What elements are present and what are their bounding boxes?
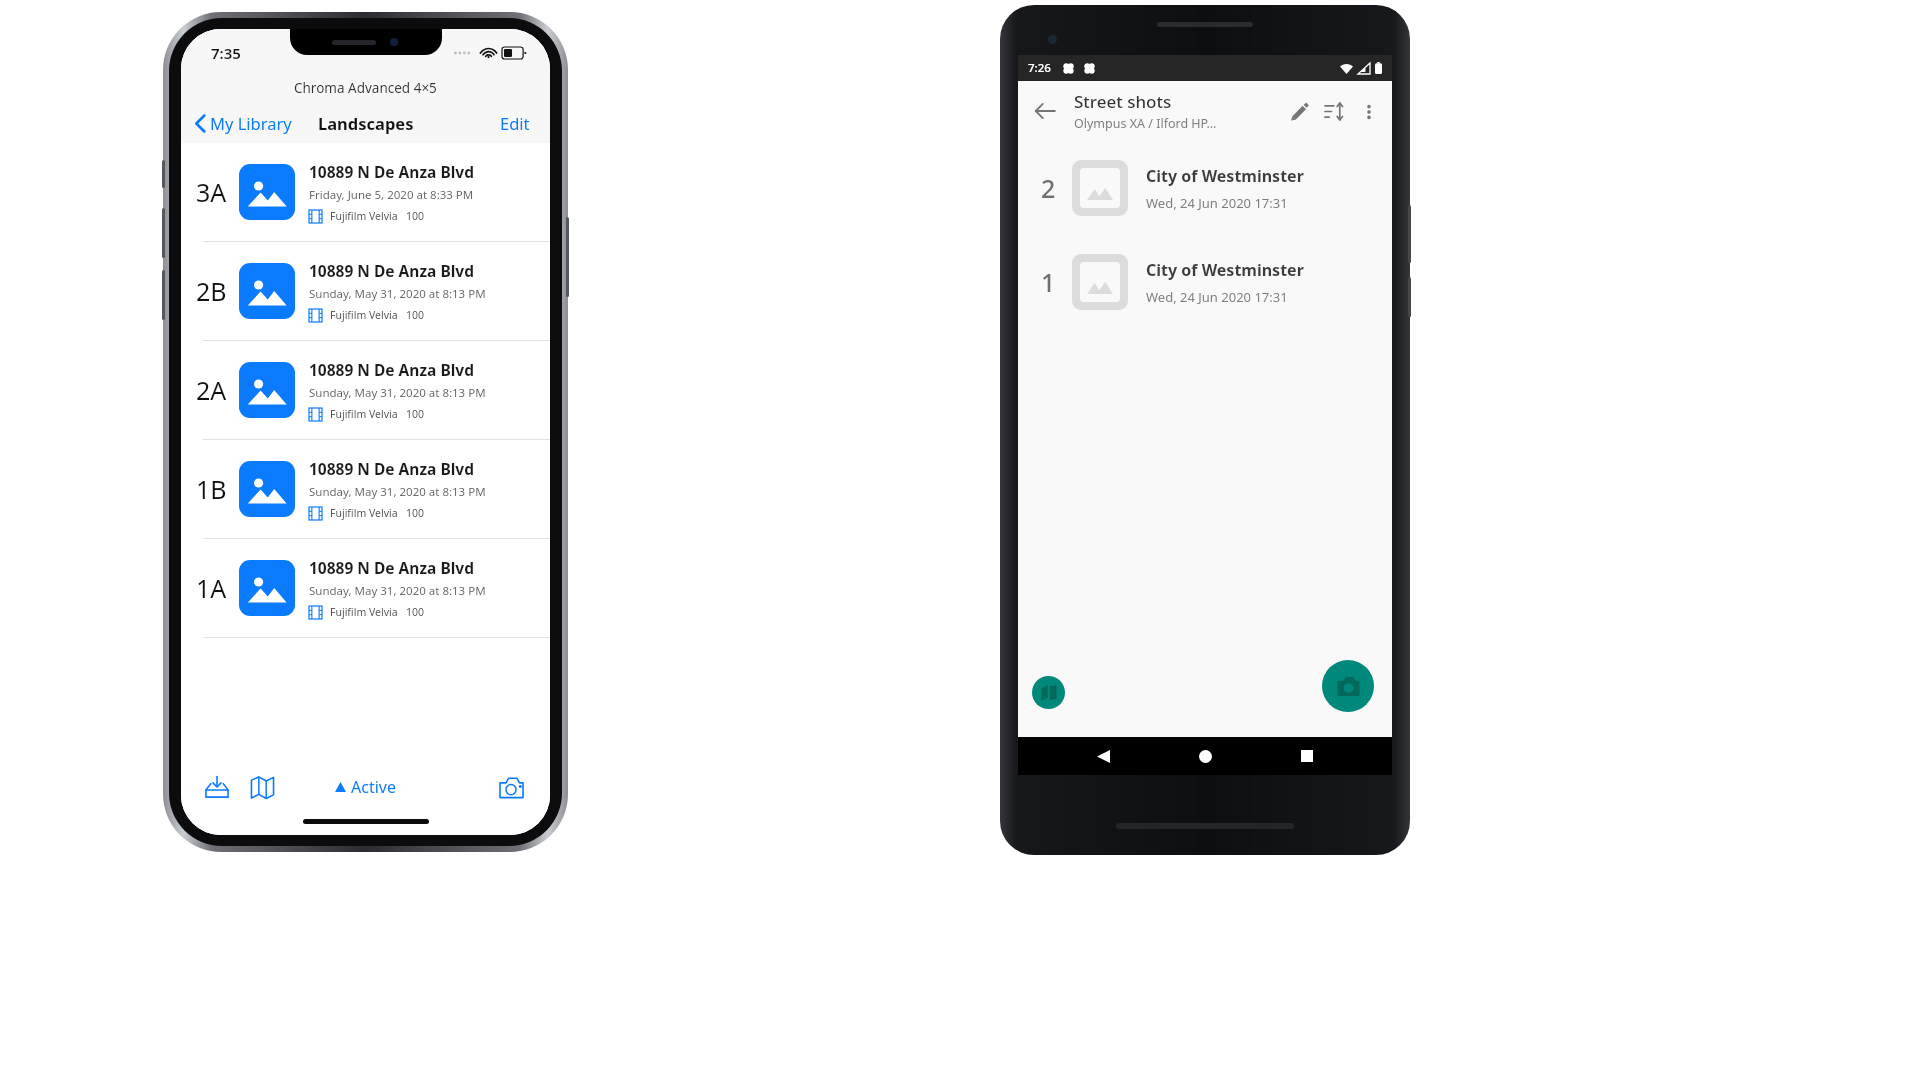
staticText: 2A bbox=[196, 373, 227, 407]
button[interactable]: My Library bbox=[191, 108, 296, 138]
staticText: Sunday, May 31, 2020 at 8:13 PM bbox=[309, 583, 486, 599]
staticText: City of Westminster bbox=[1146, 259, 1304, 281]
button[interactable]: 3A bbox=[181, 143, 550, 242]
staticText: 100 bbox=[406, 605, 425, 619]
staticText: Sunday, May 31, 2020 at 8:13 PM bbox=[309, 385, 486, 401]
button[interactable]: Sort bbox=[1317, 94, 1352, 129]
button[interactable]: More options bbox=[1352, 95, 1386, 129]
staticText: 100 bbox=[406, 308, 425, 322]
staticText: 10889 N De Anza Blvd bbox=[309, 359, 474, 380]
staticText: 7:26 bbox=[1028, 60, 1051, 76]
button[interactable]: 1B bbox=[181, 440, 550, 539]
staticText: Sunday, May 31, 2020 at 8:13 PM bbox=[309, 484, 486, 500]
staticText: Landscapes bbox=[318, 112, 414, 134]
staticText: Sunday, May 31, 2020 at 8:13 PM bbox=[309, 286, 486, 302]
button[interactable]: Import bbox=[199, 769, 235, 805]
staticText: Fujifilm Velvia bbox=[330, 407, 398, 421]
staticText: 2B bbox=[196, 274, 227, 308]
button[interactable]: Active bbox=[327, 770, 404, 804]
staticText: 10889 N De Anza Blvd bbox=[309, 458, 474, 479]
staticText: Friday, June 5, 2020 at 8:33 PM bbox=[309, 187, 474, 203]
button[interactable]: Take photo bbox=[1322, 660, 1374, 712]
button[interactable]: 2 bbox=[1018, 141, 1392, 235]
button[interactable]: 1 bbox=[1018, 235, 1392, 329]
staticText: Wed, 24 Jun 2020 17:31 bbox=[1146, 288, 1288, 306]
staticText: 3A bbox=[196, 175, 227, 209]
button[interactable]: Map bbox=[1032, 676, 1065, 709]
staticText: 10889 N De Anza Blvd bbox=[309, 161, 474, 182]
button[interactable]: Edit bbox=[1282, 94, 1317, 129]
staticText: 100 bbox=[406, 506, 425, 520]
staticText: City of Westminster bbox=[1146, 165, 1304, 187]
staticText: Active bbox=[351, 776, 396, 798]
button[interactable]: Back bbox=[1026, 92, 1064, 130]
staticText: Chroma Advanced 4×5 bbox=[294, 79, 437, 97]
button[interactable]: 1A bbox=[181, 539, 550, 638]
button[interactable]: Home bbox=[1189, 740, 1222, 773]
staticText: 100 bbox=[406, 407, 425, 421]
button[interactable]: Camera bbox=[493, 771, 530, 804]
staticText: 100 bbox=[406, 209, 425, 223]
staticText: Fujifilm Velvia bbox=[330, 209, 398, 223]
button[interactable]: Map bbox=[245, 770, 280, 805]
staticText: 10889 N De Anza Blvd bbox=[309, 260, 474, 281]
staticText: Olympus XA / Ilford HP… bbox=[1074, 115, 1217, 132]
staticText: 1B bbox=[196, 472, 227, 506]
staticText: 1 bbox=[1041, 265, 1056, 299]
staticText: Fujifilm Velvia bbox=[330, 506, 398, 520]
staticText: 2 bbox=[1041, 171, 1056, 205]
staticText: 10889 N De Anza Blvd bbox=[309, 557, 474, 578]
staticText: Street shots bbox=[1074, 90, 1172, 113]
button[interactable]: Back bbox=[1087, 740, 1120, 773]
button[interactable]: Recents bbox=[1291, 740, 1323, 772]
button[interactable]: Edit bbox=[494, 106, 536, 140]
staticText: Edit bbox=[500, 112, 530, 134]
button[interactable]: 2A bbox=[181, 341, 550, 440]
staticText: Fujifilm Velvia bbox=[330, 605, 398, 619]
staticText: My Library bbox=[210, 112, 292, 134]
button[interactable]: 2B bbox=[181, 242, 550, 341]
staticText: Wed, 24 Jun 2020 17:31 bbox=[1146, 194, 1288, 212]
staticText: 1A bbox=[196, 571, 227, 605]
staticText: 7:35 bbox=[211, 43, 241, 63]
staticText: Fujifilm Velvia bbox=[330, 308, 398, 322]
